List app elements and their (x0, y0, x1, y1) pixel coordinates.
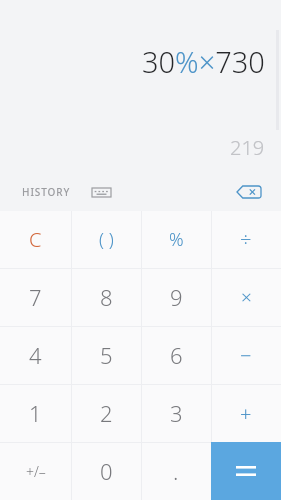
staticText: HISTORY (22, 185, 71, 199)
staticText: % (169, 227, 184, 252)
staticText: 219 (230, 134, 265, 161)
button[interactable]: +/– (0, 442, 71, 500)
button[interactable]: 6 (141, 326, 211, 384)
button[interactable]: HISTORY (22, 179, 71, 205)
button[interactable]: 0 (71, 442, 141, 500)
button[interactable]: 2 (71, 384, 141, 442)
staticText: 3 (170, 398, 183, 428)
button[interactable]: + (211, 384, 281, 442)
staticText: 7 (29, 282, 42, 312)
staticText: 5 (100, 340, 113, 370)
button[interactable]: × (211, 268, 281, 326)
staticText: 6 (170, 340, 183, 370)
button[interactable]: % (141, 211, 211, 268)
staticText: × (241, 284, 252, 310)
staticText: 30%×730 (142, 42, 265, 81)
staticText: . (173, 456, 179, 486)
button[interactable]: 3 (141, 384, 211, 442)
button[interactable]: ÷ (211, 211, 281, 268)
button[interactable]: 8 (71, 268, 141, 326)
button[interactable]: Equals (211, 442, 281, 500)
button[interactable]: C (0, 211, 71, 268)
button[interactable]: 7 (0, 268, 71, 326)
staticText: 4 (29, 340, 42, 370)
button[interactable]: Backspace (233, 181, 265, 203)
button[interactable]: . (141, 442, 211, 500)
staticText: C (29, 226, 42, 253)
button[interactable]: 1 (0, 384, 71, 442)
button[interactable]: ( ) (71, 211, 141, 268)
staticText: 2 (100, 398, 113, 428)
staticText: + (240, 400, 252, 427)
staticText: ( ) (99, 227, 114, 252)
staticText: 8 (100, 282, 113, 312)
button[interactable]: 5 (71, 326, 141, 384)
staticText: 9 (170, 282, 183, 312)
staticText: 1 (29, 398, 42, 428)
staticText: − (240, 342, 252, 369)
button[interactable]: 4 (0, 326, 71, 384)
staticText: 0 (100, 456, 113, 486)
button[interactable]: 9 (141, 268, 211, 326)
button[interactable]: − (211, 326, 281, 384)
staticText: ÷ (240, 226, 252, 253)
button[interactable]: Show keypad (91, 184, 111, 200)
staticText: +/– (26, 462, 46, 481)
